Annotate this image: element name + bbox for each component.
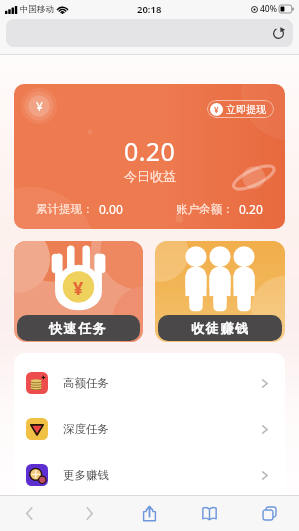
button[interactable]: Tabs [239, 496, 299, 531]
staticText: 今日收益 [124, 168, 176, 184]
staticText: 高额任务 [63, 376, 109, 390]
staticText: ¥ [73, 276, 84, 301]
button[interactable]: 更多赚钱 [14, 452, 285, 498]
staticText: 0.00 [99, 201, 123, 217]
button[interactable]: 高额任务 [14, 360, 285, 406]
button[interactable]: Bookmarks [179, 496, 239, 531]
staticText: 累计提现： [36, 202, 94, 216]
staticText: 深度任务 [63, 422, 109, 436]
staticText: ¥ [36, 98, 43, 114]
staticText: 40% [260, 3, 277, 15]
button[interactable]: 收徒赚钱 [155, 241, 285, 342]
staticText: 0.20 [124, 134, 176, 168]
button[interactable]: ¥ [14, 84, 285, 229]
staticText: ¥ [214, 104, 219, 115]
staticText: 更多赚钱 [63, 468, 109, 482]
button[interactable]: Share [119, 496, 179, 531]
button[interactable]: Forward [59, 496, 119, 531]
staticText: 0.20 [239, 201, 263, 217]
button[interactable]: ¥ [207, 100, 274, 118]
staticText: 快速任务 [49, 320, 108, 336]
button[interactable]: ¥ [14, 241, 143, 342]
staticText: 立即提现 [226, 103, 266, 116]
button[interactable]: Reload [6, 19, 293, 47]
staticText: 中国移动 [20, 4, 54, 15]
staticText: 收徒赚钱 [191, 320, 250, 336]
staticText: 账户余额： [176, 202, 234, 216]
button[interactable]: Back [0, 496, 59, 531]
button[interactable]: 深度任务 [14, 406, 285, 452]
staticText: 20:18 [137, 3, 162, 16]
button[interactable]: Reload [268, 23, 288, 43]
